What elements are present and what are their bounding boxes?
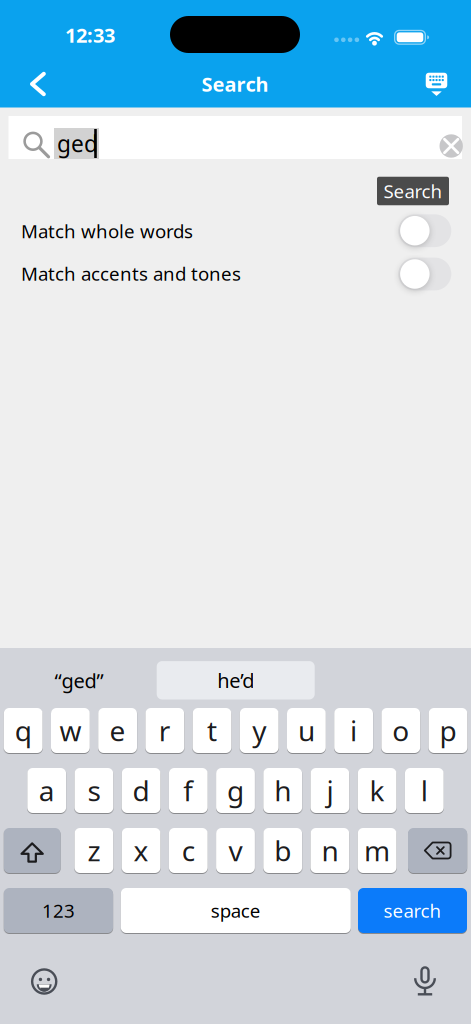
button[interactable]: Dictation [407, 957, 443, 1003]
staticText: h [274, 772, 291, 809]
button[interactable]: he’d [157, 661, 315, 699]
staticText: e [110, 712, 126, 749]
staticText: search [383, 898, 441, 923]
button[interactable]: i [334, 708, 373, 753]
button[interactable]: y [240, 708, 279, 753]
staticText: 12:33 [65, 22, 115, 48]
button[interactable]: Delete [408, 828, 467, 873]
staticText: space [211, 898, 261, 923]
button[interactable]: u [287, 708, 326, 753]
button[interactable]: t [193, 708, 231, 753]
button[interactable]: v [216, 828, 255, 873]
button[interactable]: Toggle [398, 258, 451, 290]
staticText: b [274, 832, 291, 869]
staticText: f [183, 772, 193, 809]
button[interactable]: d [122, 768, 160, 813]
staticText: t [207, 712, 217, 749]
button[interactable]: Shift [4, 828, 60, 873]
staticText: i [350, 712, 357, 749]
staticText: Search [201, 71, 268, 97]
staticText: x [134, 832, 149, 869]
button[interactable]: space [121, 888, 351, 933]
staticText: m [364, 832, 390, 869]
button[interactable]: Dismiss keyboard [418, 65, 455, 104]
staticText: Search [383, 179, 442, 203]
button[interactable]: x [122, 828, 160, 873]
staticText: ged [57, 128, 98, 158]
button[interactable]: f [169, 768, 208, 813]
staticText: y [252, 712, 266, 749]
staticText: “ged” [54, 667, 103, 694]
button[interactable]: q [4, 708, 43, 753]
button[interactable]: w [51, 708, 90, 753]
staticText: n [321, 832, 338, 869]
button[interactable]: p [429, 708, 467, 753]
staticText: w [59, 712, 81, 749]
staticText: c [182, 832, 195, 869]
staticText: d [133, 772, 150, 809]
button[interactable]: “ged” [9, 660, 149, 700]
button[interactable]: Back [20, 62, 56, 106]
staticText: 123 [42, 898, 75, 923]
button[interactable]: search [358, 888, 467, 933]
button[interactable]: k [358, 768, 396, 813]
button[interactable]: r [145, 708, 184, 753]
staticText: l [421, 772, 428, 809]
staticText: q [15, 712, 32, 749]
staticText: k [370, 772, 385, 809]
button[interactable]: z [74, 828, 113, 873]
button[interactable]: 123 [4, 888, 113, 933]
staticText: g [227, 772, 244, 809]
staticText: s [87, 772, 100, 809]
staticText: j [326, 772, 333, 809]
staticText: Match accents and tones [21, 261, 241, 286]
button[interactable]: n [310, 828, 349, 873]
button[interactable]: Search [377, 177, 449, 205]
staticText: a [39, 772, 55, 809]
staticText: u [298, 712, 315, 749]
staticText: Match whole words [21, 219, 193, 243]
button[interactable]: j [310, 768, 349, 813]
button[interactable]: b [263, 828, 302, 873]
button[interactable]: Emoji [23, 960, 65, 1003]
staticText: v [228, 832, 242, 869]
button[interactable]: s [74, 768, 113, 813]
button[interactable]: c [169, 828, 208, 873]
staticText: p [439, 712, 456, 749]
staticText: r [159, 712, 171, 749]
button[interactable]: l [405, 768, 444, 813]
button[interactable]: m [358, 828, 396, 873]
staticText: o [392, 712, 409, 749]
staticText: z [87, 832, 100, 869]
button[interactable]: h [263, 768, 302, 813]
button[interactable]: Clear text [439, 134, 463, 158]
button[interactable]: Toggle [398, 214, 451, 247]
button[interactable]: g [216, 768, 255, 813]
button[interactable]: a [27, 768, 66, 813]
button[interactable]: e [98, 708, 137, 753]
button[interactable]: o [381, 708, 420, 753]
staticText: he’d [217, 667, 254, 694]
